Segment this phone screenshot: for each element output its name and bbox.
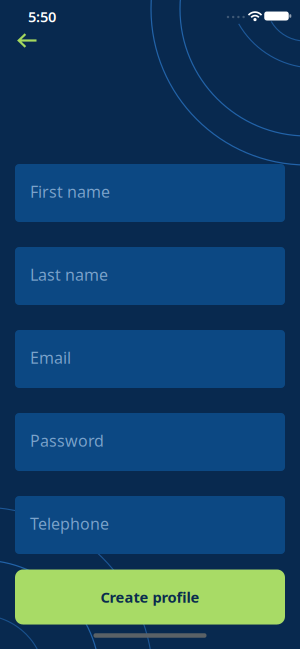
staticText: Last name — [30, 264, 108, 285]
button[interactable]: Back — [9, 22, 45, 58]
button[interactable]: Password — [15, 413, 285, 471]
staticText: Create profile — [100, 587, 199, 607]
staticText: Email — [30, 347, 71, 368]
staticText: Password — [30, 430, 104, 451]
button[interactable]: Email — [15, 330, 285, 388]
button[interactable]: First name — [15, 164, 285, 222]
button[interactable]: Telephone — [15, 496, 285, 554]
staticText: 5:50 — [28, 7, 56, 26]
staticText: Telephone — [30, 513, 109, 534]
button[interactable]: Create profile — [15, 569, 285, 624]
staticText: First name — [30, 181, 110, 202]
button[interactable]: Last name — [15, 247, 285, 305]
